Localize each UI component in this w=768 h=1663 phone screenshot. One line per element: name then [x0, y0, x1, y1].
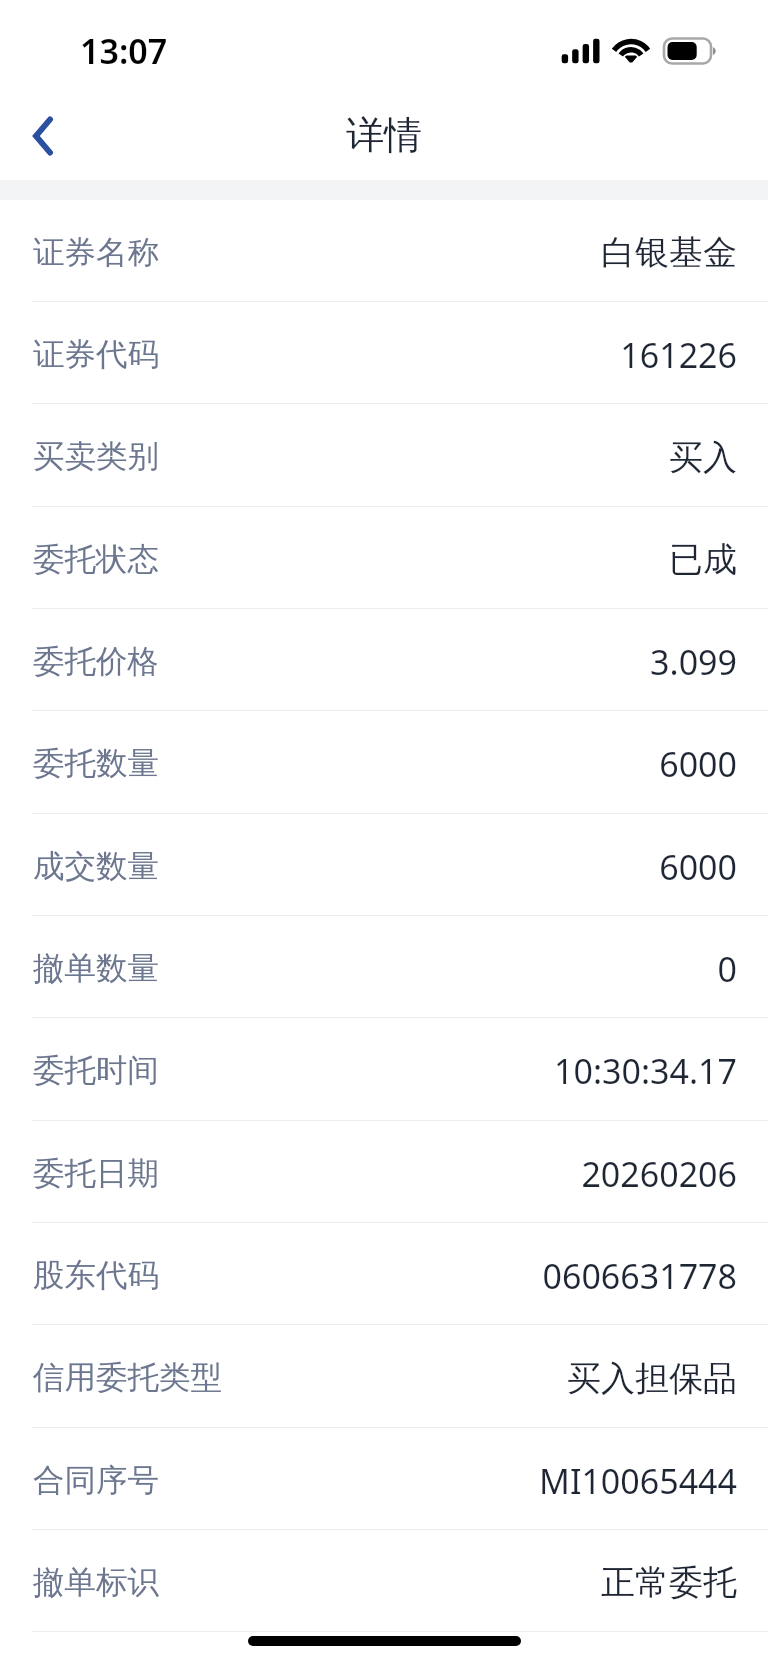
button[interactable]: 成交数量	[0, 814, 768, 916]
staticText: 详情	[346, 111, 422, 159]
staticText: 买入	[669, 436, 737, 479]
staticText: 撤单数量	[33, 949, 159, 989]
staticText: 委托状态	[33, 540, 159, 580]
staticText: 委托时间	[33, 1051, 159, 1091]
button[interactable]: 撤单标识	[0, 1530, 768, 1632]
button[interactable]: 信用委托类型	[0, 1325, 768, 1428]
button[interactable]: 委托数量	[0, 711, 768, 814]
staticText: 合同序号	[33, 1461, 159, 1501]
button[interactable]: 委托状态	[0, 507, 768, 609]
button[interactable]: 合同序号	[0, 1428, 768, 1530]
button[interactable]: Back	[8, 94, 76, 154]
staticText: 买卖类别	[33, 437, 159, 477]
staticText: 委托日期	[33, 1154, 159, 1194]
staticText: 证券代码	[33, 335, 159, 375]
staticText: 买入担保品	[567, 1357, 737, 1400]
button[interactable]: 股东代码	[0, 1223, 768, 1325]
button[interactable]: 委托价格	[0, 609, 768, 711]
staticText: 股东代码	[33, 1256, 159, 1296]
button[interactable]: 买卖类别	[0, 404, 768, 507]
staticText: 证券名称	[33, 233, 159, 273]
staticText: 委托价格	[33, 642, 159, 682]
staticText: 已成	[669, 538, 737, 581]
staticText: 3.099	[650, 639, 737, 685]
button[interactable]: 委托时间	[0, 1018, 768, 1121]
staticText: 委托数量	[33, 744, 159, 784]
staticText: 6000	[659, 741, 737, 787]
button[interactable]: 委托日期	[0, 1121, 768, 1223]
staticText: 成交数量	[33, 847, 159, 887]
staticText: 6000	[659, 844, 737, 890]
staticText: 信用委托类型	[33, 1358, 222, 1398]
staticText: 撤单标识	[33, 1563, 159, 1603]
staticText: MI10065444	[539, 1458, 737, 1504]
staticText: 20260206	[581, 1151, 737, 1197]
button[interactable]: 证券名称	[0, 200, 768, 302]
staticText: 10:30:34.17	[554, 1048, 737, 1094]
staticText: 白银基金	[601, 231, 737, 274]
staticText: 0606631778	[542, 1253, 737, 1299]
staticText: 13:07	[80, 28, 168, 74]
staticText: 161226	[620, 332, 737, 378]
staticText: 0	[717, 946, 737, 992]
button[interactable]: 证券代码	[0, 302, 768, 404]
staticText: 正常委托	[601, 1561, 737, 1604]
button[interactable]: 撤单数量	[0, 916, 768, 1018]
other: Signal, Wi-Fi and battery status	[560, 37, 720, 65]
